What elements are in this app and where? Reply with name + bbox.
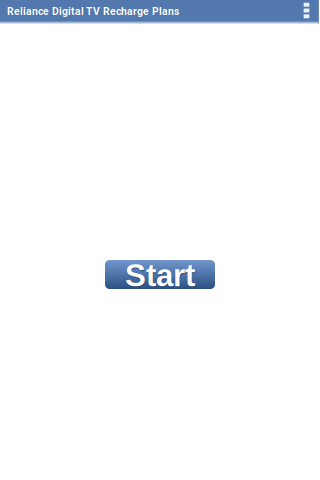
staticText: Start [126, 259, 196, 294]
button[interactable]: More options [298, 0, 314, 21]
staticText: Reliance Digital TV Recharge Plans [7, 5, 179, 18]
button[interactable]: Start [105, 260, 215, 289]
staticText: Start [125, 258, 195, 293]
